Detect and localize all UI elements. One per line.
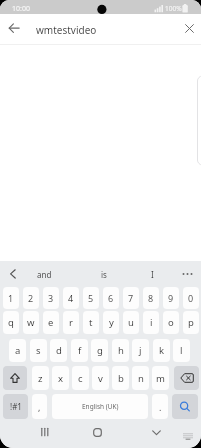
- button[interactable]: a: [9, 339, 26, 362]
- staticText: o: [168, 316, 174, 329]
- button[interactable]: English (UK): [52, 394, 148, 419]
- staticText: b: [118, 372, 124, 385]
- staticText: 3: [48, 292, 54, 304]
- staticText: p: [188, 316, 194, 329]
- staticText: r: [69, 316, 73, 329]
- staticText: f: [78, 344, 82, 357]
- button[interactable]: .: [152, 394, 168, 419]
- button[interactable]: p: [183, 311, 199, 334]
- staticText: c: [78, 372, 83, 385]
- button[interactable]: ,: [32, 394, 47, 419]
- button[interactable]: [144, 421, 168, 445]
- staticText: n: [138, 372, 144, 385]
- staticText: u: [128, 316, 134, 329]
- button[interactable]: t: [83, 311, 99, 334]
- button[interactable]: [33, 420, 57, 444]
- button[interactable]: 0: [183, 287, 199, 309]
- staticText: !#1: [10, 401, 22, 412]
- button[interactable]: d: [50, 339, 67, 362]
- button[interactable]: l: [173, 339, 190, 362]
- staticText: wmtestvideo: [36, 23, 97, 37]
- button[interactable]: [176, 263, 198, 285]
- button[interactable]: I: [132, 263, 172, 285]
- staticText: 7: [128, 292, 134, 304]
- staticText: 9: [168, 292, 174, 304]
- staticText: is: [101, 269, 107, 280]
- staticText: 1: [8, 292, 14, 304]
- staticText: j: [139, 344, 142, 357]
- button[interactable]: 4: [63, 287, 79, 309]
- staticText: q: [8, 316, 14, 329]
- staticText: k: [159, 344, 165, 357]
- button[interactable]: [177, 16, 201, 40]
- button[interactable]: [2, 263, 24, 285]
- button[interactable]: f: [71, 339, 88, 362]
- button[interactable]: [2, 16, 26, 40]
- button[interactable]: is: [84, 263, 124, 285]
- staticText: m: [156, 372, 165, 385]
- button[interactable]: o: [163, 311, 179, 334]
- button[interactable]: k: [153, 339, 170, 362]
- button[interactable]: g: [91, 339, 108, 362]
- button[interactable]: [179, 427, 197, 445]
- staticText: ,: [38, 401, 41, 413]
- staticText: .: [159, 401, 162, 413]
- staticText: h: [118, 344, 124, 357]
- staticText: 0: [188, 292, 194, 304]
- staticText: 100%: [165, 4, 182, 13]
- button[interactable]: 9: [163, 287, 179, 309]
- staticText: d: [56, 344, 62, 357]
- button[interactable]: and: [24, 263, 64, 285]
- staticText: 5: [88, 292, 94, 304]
- staticText: 2: [28, 292, 34, 304]
- staticText: x: [58, 372, 64, 385]
- button[interactable]: 7: [123, 287, 139, 309]
- button[interactable]: z: [32, 366, 49, 390]
- staticText: e: [48, 316, 54, 329]
- button[interactable]: e: [43, 311, 59, 334]
- staticText: s: [36, 344, 41, 357]
- button[interactable]: r: [63, 311, 79, 334]
- button[interactable]: [85, 420, 109, 444]
- staticText: t: [89, 316, 93, 329]
- button[interactable]: [3, 366, 27, 390]
- button[interactable]: 2: [23, 287, 39, 309]
- staticText: g: [97, 344, 103, 357]
- staticText: 10:00: [12, 4, 30, 14]
- button[interactable]: c: [72, 366, 89, 390]
- staticText: l: [180, 344, 183, 357]
- button[interactable]: 3: [43, 287, 59, 309]
- button[interactable]: 8: [143, 287, 159, 309]
- staticText: I: [151, 269, 154, 280]
- button[interactable]: u: [123, 311, 139, 334]
- staticText: w: [27, 316, 35, 329]
- staticText: y: [109, 316, 114, 329]
- button[interactable]: i: [143, 311, 159, 334]
- staticText: 4: [68, 292, 74, 304]
- button[interactable]: 1: [3, 287, 19, 309]
- staticText: v: [98, 372, 103, 385]
- staticText: 8: [148, 292, 154, 304]
- button[interactable]: m: [152, 366, 169, 390]
- button[interactable]: x: [52, 366, 69, 390]
- button[interactable]: [172, 394, 198, 419]
- button[interactable]: h: [112, 339, 129, 362]
- button[interactable]: n: [132, 366, 149, 390]
- button[interactable]: y: [103, 311, 119, 334]
- button[interactable]: j: [132, 339, 149, 362]
- staticText: a: [15, 344, 21, 357]
- staticText: z: [38, 372, 43, 385]
- staticText: and: [37, 269, 52, 280]
- button[interactable]: w: [23, 311, 39, 334]
- staticText: 6: [108, 292, 114, 304]
- staticText: i: [150, 316, 153, 329]
- button[interactable]: 5: [83, 287, 99, 309]
- button[interactable]: 6: [103, 287, 119, 309]
- button[interactable]: b: [112, 366, 129, 390]
- button[interactable]: !#1: [3, 394, 28, 419]
- button[interactable]: v: [92, 366, 109, 390]
- staticText: English (UK): [82, 402, 119, 411]
- button[interactable]: q: [3, 311, 19, 334]
- button[interactable]: s: [30, 339, 47, 362]
- button[interactable]: [174, 366, 199, 390]
